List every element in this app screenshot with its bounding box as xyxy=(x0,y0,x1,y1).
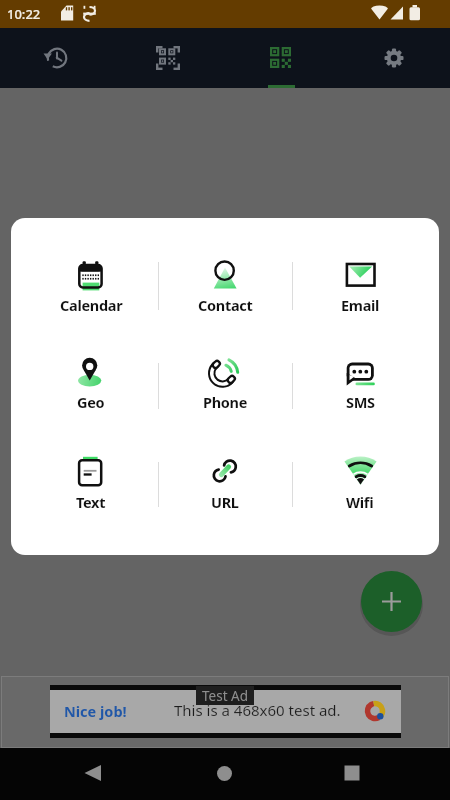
staticText: This is a 468x60 test ad. xyxy=(174,700,341,720)
staticText: Test Ad xyxy=(202,687,248,705)
staticText: Calendar xyxy=(60,295,123,315)
button[interactable]: Nice job! xyxy=(50,685,401,737)
button[interactable] xyxy=(0,28,112,88)
staticText: SMS xyxy=(346,392,375,412)
button[interactable]: Contact xyxy=(163,255,287,315)
button[interactable]: URL xyxy=(163,452,287,512)
staticText: Contact xyxy=(198,295,253,315)
staticText: Email xyxy=(341,295,380,315)
button[interactable]: Email xyxy=(298,255,422,315)
button[interactable] xyxy=(337,28,450,88)
button[interactable] xyxy=(224,28,337,88)
staticText: Geo xyxy=(77,392,105,412)
staticText: Phone xyxy=(203,392,248,412)
staticText: Text xyxy=(76,492,106,512)
button[interactable]: Wifi xyxy=(298,452,422,512)
button[interactable] xyxy=(361,571,422,632)
button[interactable]: Phone xyxy=(163,352,287,412)
staticText: Nice job! xyxy=(64,701,127,721)
button[interactable] xyxy=(150,748,300,800)
button[interactable]: Geo xyxy=(29,352,153,412)
button[interactable]: Calendar xyxy=(29,255,153,315)
staticText: 10:22 xyxy=(7,5,41,23)
button[interactable]: SMS xyxy=(298,352,422,412)
button[interactable] xyxy=(112,28,224,88)
staticText: Wifi xyxy=(346,492,374,512)
button[interactable]: Text xyxy=(29,452,153,512)
staticText: URL xyxy=(211,492,239,512)
button[interactable] xyxy=(300,748,450,800)
button[interactable] xyxy=(0,748,150,800)
